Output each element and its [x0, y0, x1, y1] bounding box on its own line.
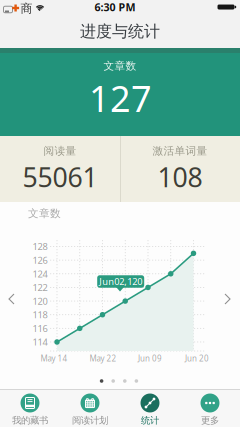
staticText: 我的藏书	[12, 415, 48, 426]
staticText: 108	[157, 159, 202, 195]
button[interactable]: 统计	[120, 389, 180, 427]
staticText: 进度与统计	[80, 22, 160, 41]
staticText: 122	[32, 281, 47, 294]
staticText: 126	[32, 254, 47, 266]
button[interactable]: 阅读计划	[60, 389, 120, 427]
staticText: 6:30 PM	[94, 0, 135, 14]
staticText: May 14	[40, 353, 67, 364]
staticText: 阅读计划	[72, 415, 108, 426]
button[interactable]	[220, 289, 236, 309]
button[interactable]: 我的藏书	[0, 389, 60, 427]
staticText: May 22	[89, 353, 116, 364]
staticText: 文章数	[103, 59, 136, 72]
staticText: Jun 20	[185, 353, 209, 364]
staticText: 激活单词量	[152, 144, 207, 157]
staticText: 55061	[22, 159, 97, 195]
staticText: 116	[32, 322, 47, 334]
staticText: 124	[32, 268, 47, 280]
staticText: 商	[20, 1, 32, 16]
staticText: Jun 09	[138, 353, 162, 364]
staticText: 120	[32, 295, 47, 307]
button[interactable]: 更多	[180, 389, 240, 427]
staticText: 128	[32, 240, 47, 253]
staticText: 127	[89, 74, 152, 122]
staticText: 文章数	[28, 207, 61, 220]
staticText: 118	[32, 308, 47, 321]
button[interactable]	[3, 289, 19, 309]
staticText: 更多	[201, 415, 219, 426]
staticText: 统计	[141, 415, 159, 426]
staticText: Jun02,120	[99, 275, 142, 288]
staticText: 阅读量	[43, 144, 76, 157]
staticText: 114	[32, 336, 47, 348]
